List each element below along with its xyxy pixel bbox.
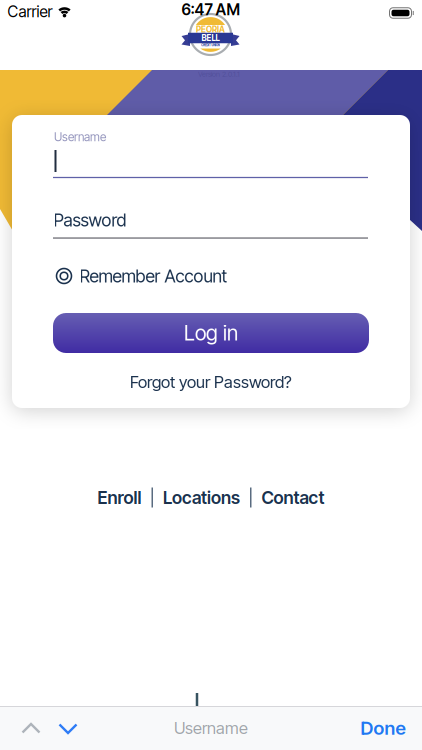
staticText: Version 2.0.1.1 (198, 70, 240, 78)
button[interactable]: Remember Account (56, 265, 227, 287)
button[interactable]: Forgot your Password? (130, 372, 292, 392)
button[interactable]: Contact (261, 487, 324, 508)
staticText: Locations (163, 487, 240, 508)
staticText: CREDIT UNION (184, 41, 236, 50)
button[interactable]: Enroll (97, 487, 141, 508)
button[interactable]: Locations (163, 487, 240, 508)
button[interactable]: Next field (58, 723, 78, 735)
staticText: Password (53, 209, 126, 231)
staticText: Log in (184, 320, 238, 345)
button[interactable]: Previous field (21, 722, 41, 734)
staticText: Carrier (7, 2, 52, 21)
staticText: Username (54, 130, 106, 144)
staticText: BELL (201, 33, 219, 43)
staticText: Remember Account (79, 265, 227, 287)
staticText: Enroll (97, 487, 141, 508)
button[interactable]: Done (360, 717, 405, 739)
staticText: Done (360, 717, 405, 739)
staticText: Contact (261, 487, 324, 508)
button[interactable]: Log in (53, 313, 369, 353)
staticText: Forgot your Password? (130, 372, 292, 392)
staticText: PEORIA (196, 24, 225, 34)
staticText: Username (174, 718, 248, 738)
staticText: 6:47 AM (181, 0, 240, 19)
